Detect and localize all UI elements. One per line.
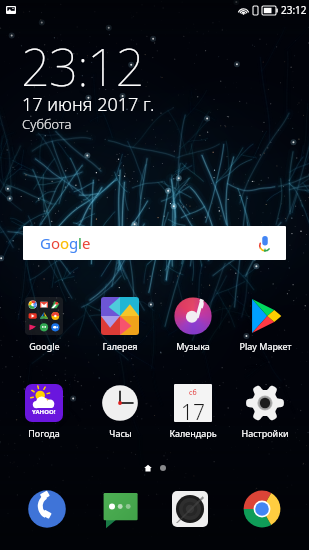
staticText: Суббота	[22, 115, 72, 133]
staticText: Календарь	[169, 427, 217, 439]
staticText: Play Маркет	[239, 340, 292, 352]
button[interactable]: Camera	[170, 489, 210, 529]
staticText: Галерея	[102, 340, 138, 352]
button[interactable]: Chrome	[242, 489, 282, 529]
staticText: Настройки	[241, 427, 289, 439]
button[interactable]: Музыка	[159, 297, 227, 352]
staticText: Погода	[28, 427, 60, 439]
staticText: g	[69, 233, 78, 253]
staticText: Часы	[109, 427, 132, 439]
button[interactable]: Phone	[27, 489, 67, 529]
staticText: сб	[189, 388, 197, 398]
staticText: o	[60, 233, 69, 253]
staticText: 23:12	[281, 3, 307, 17]
staticText: Музыка	[176, 340, 210, 352]
button[interactable]: Часы	[86, 384, 154, 439]
button[interactable]: Messages	[102, 489, 142, 529]
button[interactable]: G	[23, 226, 286, 260]
staticText: o	[51, 233, 60, 253]
staticText: l	[78, 233, 82, 253]
button[interactable]: Play Маркет	[231, 297, 299, 352]
button[interactable]: Google	[10, 297, 78, 352]
staticText: YAHOO!	[32, 408, 56, 416]
button[interactable]: Настройки	[231, 384, 299, 439]
staticText: G	[40, 233, 51, 253]
staticText: e	[82, 233, 91, 253]
staticText: 17 июня 2017 г.	[22, 92, 155, 117]
staticText: Google	[29, 340, 60, 352]
button[interactable]: YAHOO!	[10, 384, 78, 439]
button[interactable]: Галерея	[86, 297, 154, 352]
staticText: 23:12	[21, 31, 144, 100]
staticText: 17	[181, 398, 205, 422]
button[interactable]: сб	[159, 384, 227, 439]
